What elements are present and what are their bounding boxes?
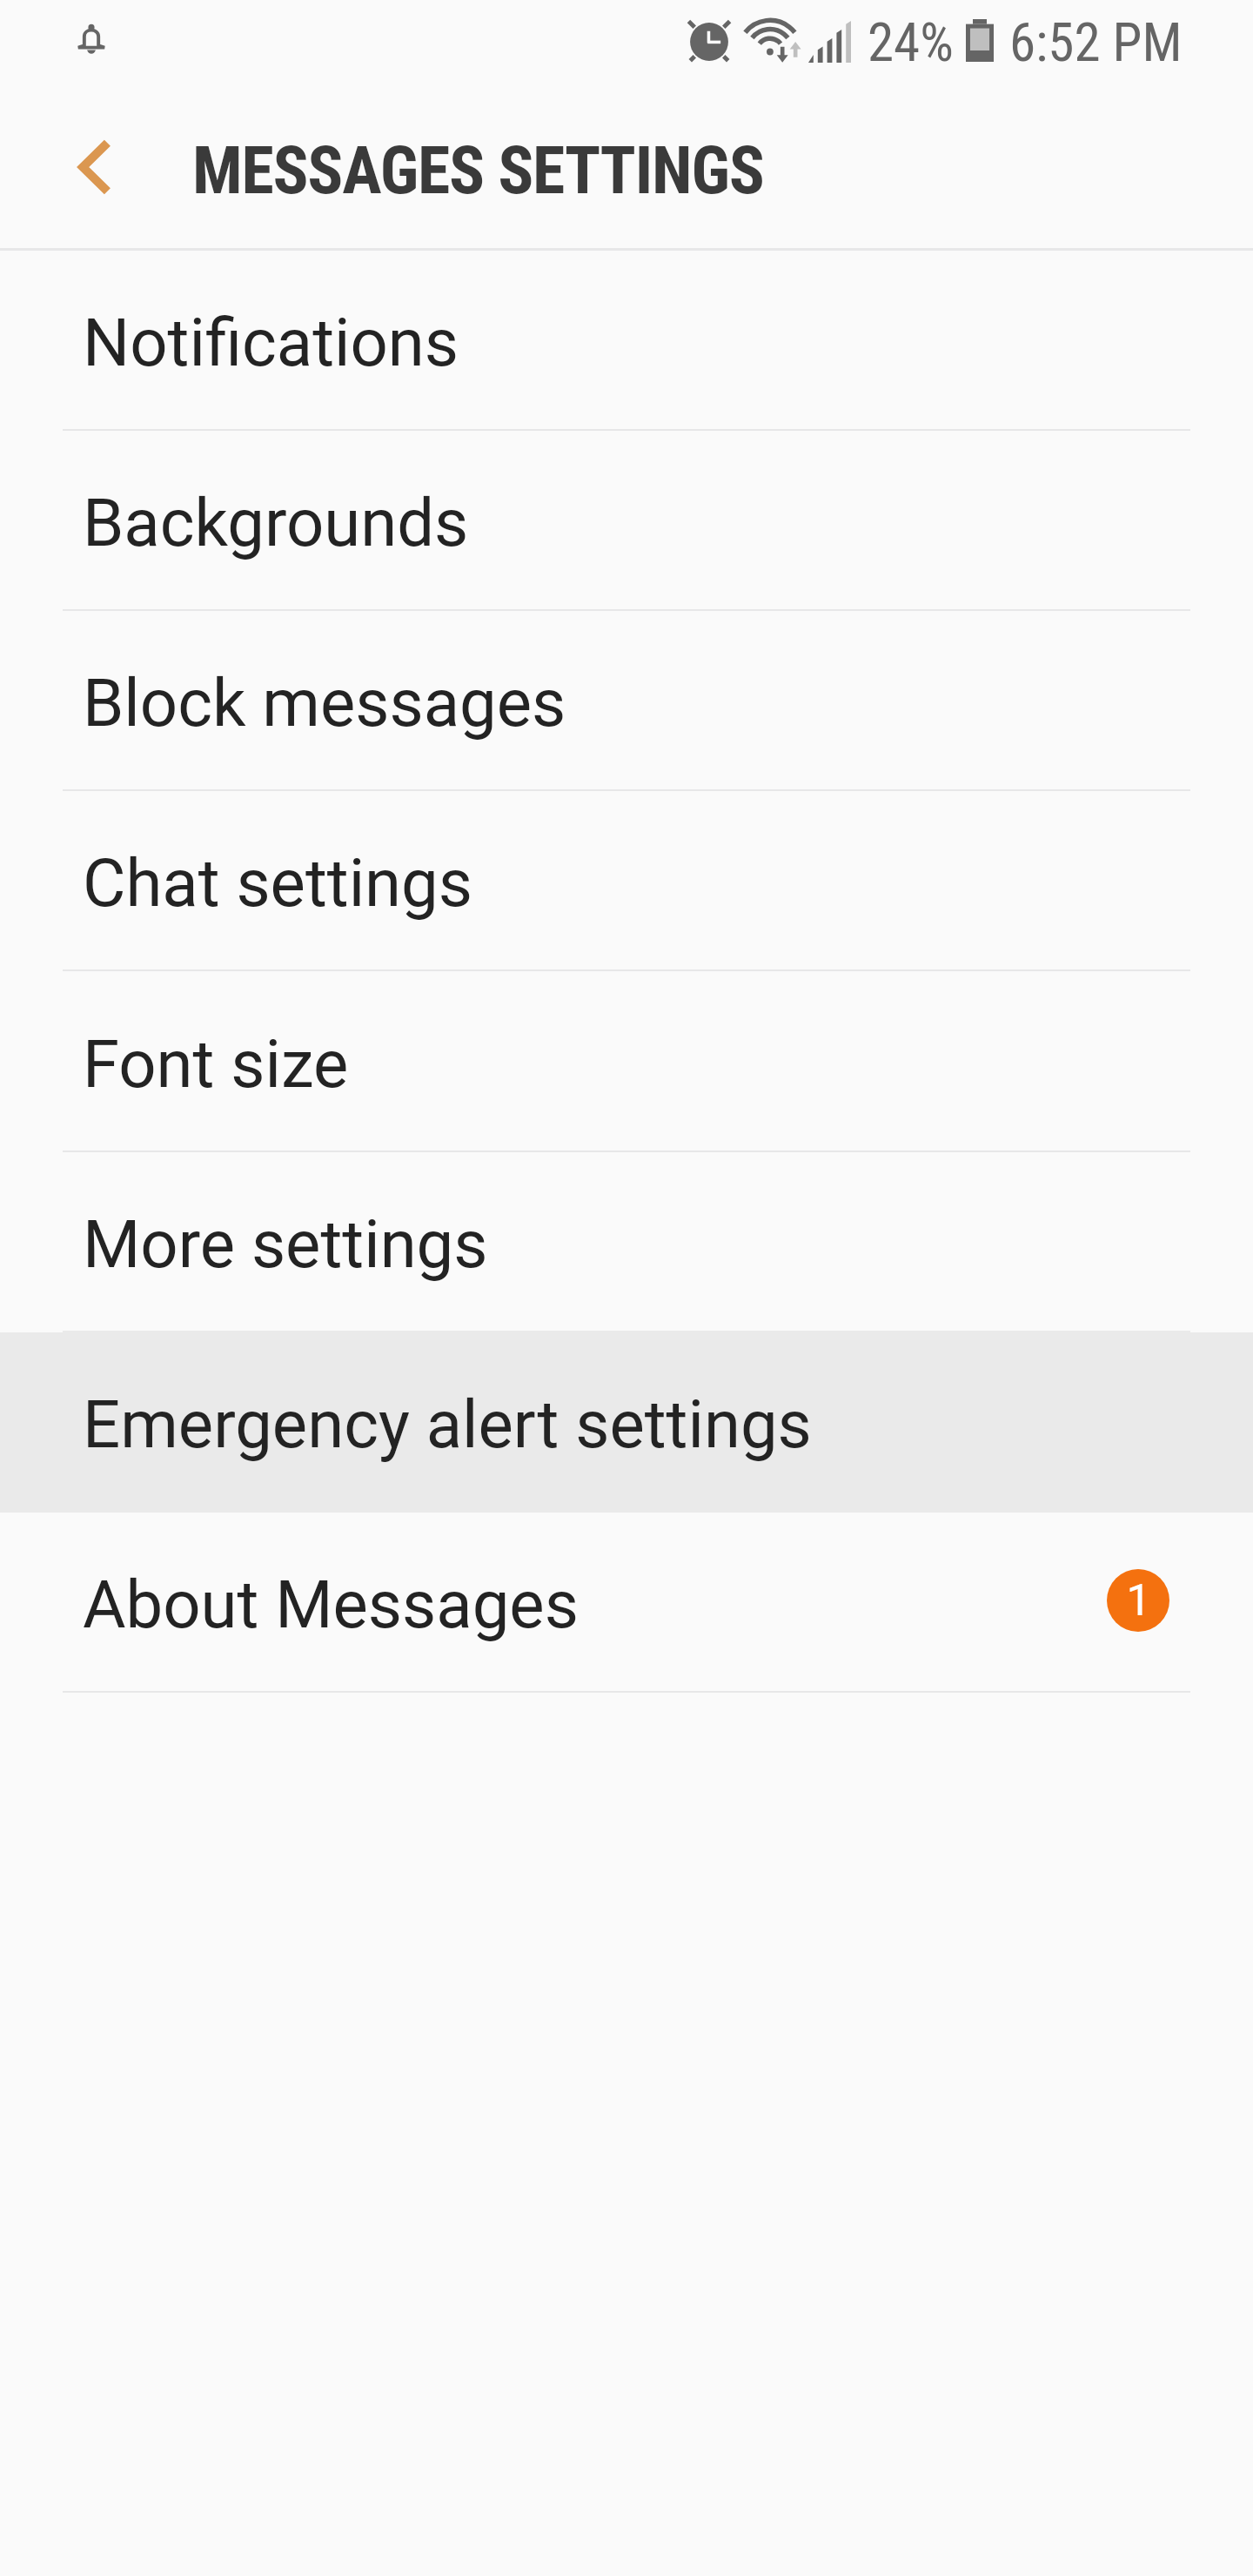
button[interactable]: Chat settings: [0, 791, 1253, 971]
button[interactable]: Emergency alert settings: [0, 1332, 1253, 1513]
staticText: More settings: [83, 1205, 488, 1283]
staticText: 6:52 PM: [1009, 11, 1183, 73]
button[interactable]: Block messages: [0, 611, 1253, 791]
staticText: Emergency alert settings: [83, 1385, 812, 1463]
button[interactable]: Font size: [0, 972, 1253, 1152]
staticText: Notifications: [83, 304, 459, 381]
staticText: Backgrounds: [83, 484, 469, 561]
button[interactable]: Navigate up: [24, 78, 164, 248]
staticText: About Messages: [83, 1566, 579, 1643]
staticText: 1: [1126, 1575, 1151, 1627]
staticText: Chat settings: [83, 844, 472, 922]
button[interactable]: About Messages: [0, 1513, 1253, 1693]
staticText: 24%: [868, 11, 954, 73]
button[interactable]: More settings: [0, 1152, 1253, 1332]
staticText: MESSAGES SETTINGS: [192, 131, 764, 209]
staticText: Block messages: [83, 664, 566, 741]
staticText: Font size: [83, 1025, 349, 1103]
button[interactable]: Notifications: [0, 251, 1253, 431]
button[interactable]: Backgrounds: [0, 431, 1253, 611]
